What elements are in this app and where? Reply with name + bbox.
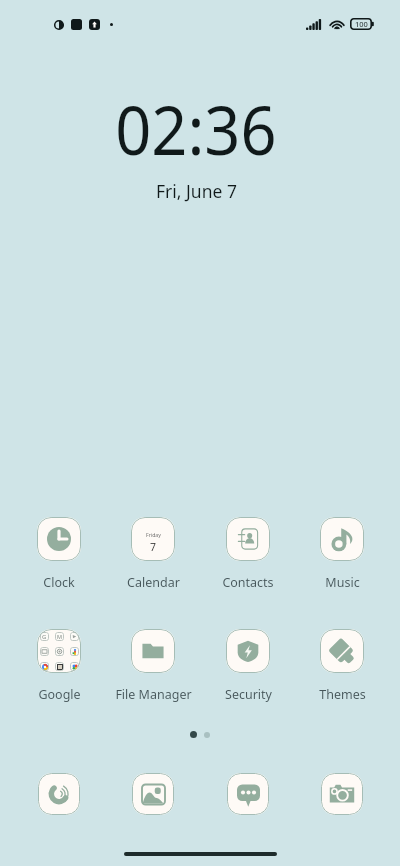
- staticText: 7: [150, 540, 157, 554]
- button[interactable]: Music: [296, 512, 388, 596]
- staticText: Calendar: [127, 574, 180, 591]
- staticText: Security: [225, 686, 272, 703]
- staticText: G: [42, 633, 47, 641]
- button[interactable]: G: [13, 624, 105, 708]
- staticText: Clock: [43, 574, 75, 591]
- staticText: 100: [355, 19, 368, 29]
- staticText: Fri, June 7: [156, 179, 237, 203]
- staticText: Themes: [319, 686, 366, 703]
- staticText: Music: [325, 574, 360, 591]
- button[interactable]: Themes: [296, 624, 388, 708]
- button[interactable]: Gallery: [129, 770, 177, 818]
- button[interactable]: File Manager: [107, 624, 199, 708]
- button[interactable]: Phone: [35, 770, 83, 818]
- staticText: Google: [38, 686, 81, 703]
- button[interactable]: Camera: [318, 770, 366, 818]
- button[interactable]: Friday: [107, 512, 199, 596]
- button[interactable]: Messages: [224, 770, 272, 818]
- button[interactable]: Contacts: [202, 512, 294, 596]
- staticText: Friday: [146, 531, 161, 538]
- button[interactable]: Clock: [13, 512, 105, 596]
- staticText: File Manager: [115, 686, 192, 703]
- staticText: Contacts: [222, 574, 274, 591]
- staticText: M: [57, 633, 62, 640]
- staticText: 02:36: [115, 82, 277, 175]
- button[interactable]: Security: [202, 624, 294, 708]
